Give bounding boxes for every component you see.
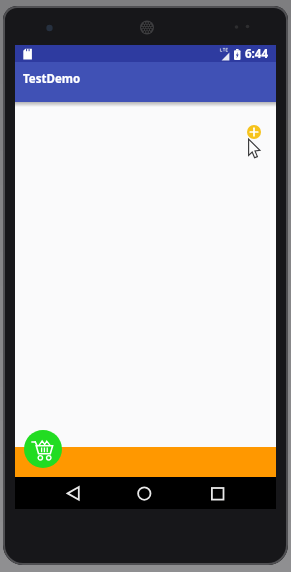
button[interactable]	[102, 477, 189, 509]
button[interactable]	[24, 430, 62, 468]
button[interactable]	[15, 477, 102, 509]
staticText: 6:44	[245, 46, 268, 62]
button[interactable]	[247, 125, 261, 139]
button[interactable]	[15, 447, 276, 477]
button[interactable]	[189, 477, 276, 509]
staticText: TestDemo	[23, 71, 81, 87]
